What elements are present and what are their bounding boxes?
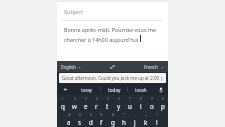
button[interactable]: 1 <box>57 95 69 111</box>
staticText: d <box>89 118 93 126</box>
staticText: 5 <box>107 97 109 101</box>
staticText: s <box>78 118 81 126</box>
button[interactable]: # <box>74 111 85 127</box>
button[interactable]: 5 <box>102 95 113 111</box>
staticText: f <box>100 118 103 126</box>
staticText: chercher à 14h00 aujourd'hui <box>64 36 139 43</box>
button[interactable]: @ <box>63 111 74 127</box>
staticText: English <box>61 64 76 70</box>
staticText: & <box>112 113 115 117</box>
staticText: l <box>156 118 158 126</box>
staticText: u <box>128 102 132 110</box>
staticText: q <box>61 102 65 110</box>
staticText: 2 <box>74 97 76 101</box>
staticText: + <box>145 113 147 117</box>
staticText: 3 <box>85 97 87 101</box>
button[interactable]: today <box>101 84 127 95</box>
button[interactable]: English <box>61 64 81 70</box>
staticText: % <box>100 113 103 117</box>
button[interactable]: ( <box>151 111 162 127</box>
button[interactable]: Swap languages <box>108 63 116 71</box>
staticText: k <box>144 118 148 126</box>
staticText: torah <box>135 87 147 93</box>
staticText: o <box>150 102 154 110</box>
staticText: p <box>161 102 165 110</box>
staticText: g <box>111 118 115 126</box>
button[interactable]: 3 <box>80 95 91 111</box>
button[interactable]: torah <box>128 84 154 95</box>
staticText: - <box>135 113 136 117</box>
button[interactable]: $ <box>85 111 96 127</box>
button[interactable]: % <box>96 111 107 127</box>
button[interactable]: Subject <box>57 2 168 20</box>
staticText: @ <box>68 113 71 117</box>
staticText: e <box>84 102 88 110</box>
staticText: Subject <box>64 8 83 15</box>
button[interactable]: - <box>129 111 140 127</box>
button[interactable]: toray <box>73 84 100 95</box>
staticText: Good afternoon. Could you pick me up at … <box>62 75 161 81</box>
staticText: w <box>72 102 77 110</box>
staticText: * <box>123 113 125 117</box>
staticText: y <box>117 102 121 110</box>
staticText: 8 <box>140 97 142 101</box>
staticText: toray <box>81 87 93 93</box>
staticText: 0 <box>162 97 164 101</box>
staticText: a <box>67 118 71 126</box>
button[interactable]: Good afternoon. Could you pick me up at … <box>59 73 166 83</box>
staticText: $ <box>90 113 92 117</box>
staticText: r <box>95 102 98 110</box>
button[interactable]: Voice input <box>154 84 168 95</box>
button[interactable]: 4 <box>91 95 102 111</box>
button[interactable]: 6 <box>113 95 124 111</box>
staticText: ( <box>157 113 158 117</box>
staticText: Bonne après-midi. Pourriez-vous me <box>64 26 157 33</box>
staticText: 6 <box>118 97 120 101</box>
button[interactable]: 9 <box>146 95 157 111</box>
button[interactable]: 0 <box>157 95 168 111</box>
button[interactable]: Bonne après-midi. Pourriez-vous me <box>64 26 162 43</box>
staticText: 9 <box>151 97 153 101</box>
staticText: 1 <box>62 97 64 101</box>
button[interactable]: + <box>140 111 151 127</box>
button[interactable]: & <box>107 111 118 127</box>
button[interactable]: 2 <box>69 95 80 111</box>
button[interactable]: 8 <box>135 95 146 111</box>
staticText: # <box>79 113 81 117</box>
staticText: 7 <box>129 97 131 101</box>
staticText: j <box>134 118 136 126</box>
staticText: t <box>106 102 109 110</box>
button[interactable]: Back <box>57 84 73 95</box>
staticText: i <box>140 102 142 110</box>
staticText: today <box>161 75 164 81</box>
button[interactable]: French <box>144 64 164 70</box>
staticText: 4 <box>96 97 98 101</box>
button[interactable]: 7 <box>124 95 135 111</box>
staticText: h <box>122 118 126 126</box>
staticText: French <box>144 64 159 70</box>
staticText: today <box>108 87 121 93</box>
button[interactable]: * <box>118 111 129 127</box>
